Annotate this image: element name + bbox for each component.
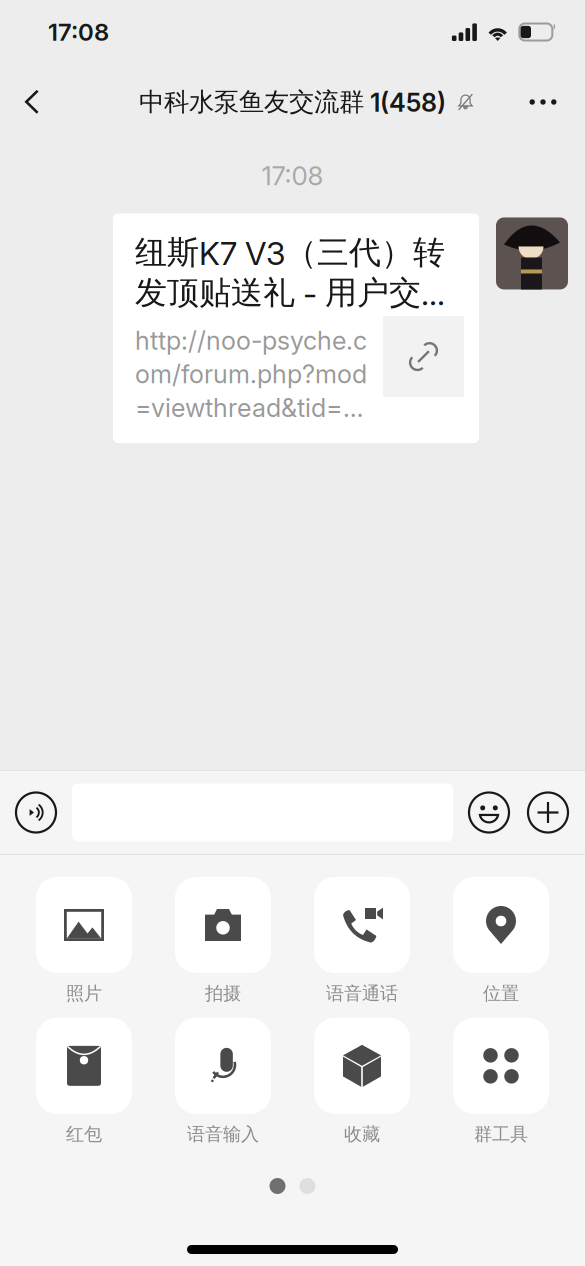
button[interactable]: 语音通话 (314, 877, 410, 1005)
button[interactable]: 语音输入 (175, 1018, 271, 1146)
staticText: 红包 (66, 1123, 102, 1146)
staticText: 收藏 (344, 1123, 380, 1146)
button[interactable]: 照片 (36, 877, 132, 1005)
staticText: 中科水泵鱼友交流群 1(458) (139, 86, 446, 118)
button[interactable]: 拍摄 (175, 877, 271, 1005)
staticText: 17:08 (261, 160, 323, 191)
button[interactable]: Back (6, 74, 58, 130)
staticText: 语音输入 (187, 1123, 259, 1146)
button[interactable]: 群工具 (453, 1018, 549, 1146)
staticText: 17:08 (48, 17, 109, 46)
button[interactable]: 位置 (453, 877, 549, 1005)
staticText: 拍摄 (205, 982, 241, 1005)
staticText: 照片 (66, 982, 102, 1005)
button[interactable]: More actions (528, 792, 568, 832)
staticText: http://noo-psyche.c om/forum.php?mod =vi… (135, 325, 367, 423)
button[interactable]: 收藏 (314, 1018, 410, 1146)
button[interactable]: Emoji keyboard (469, 792, 509, 832)
button[interactable]: 红包 (36, 1018, 132, 1146)
button[interactable]: More options (517, 74, 569, 130)
staticText: 纽斯K7 V3（三代）转 发顶贴送礼 - 用户交… (135, 232, 445, 313)
staticText: 位置 (483, 982, 519, 1005)
staticText: 语音通话 (326, 982, 398, 1005)
button[interactable]: Voice message (16, 792, 56, 832)
staticText: 群工具 (474, 1123, 528, 1146)
